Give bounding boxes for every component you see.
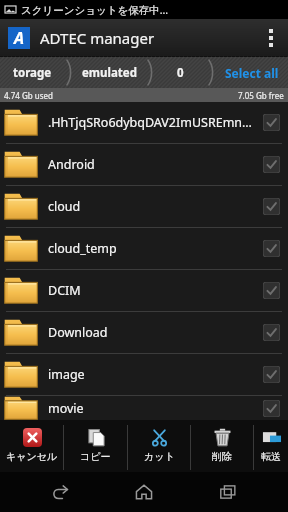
button[interactable]: Select item (263, 366, 280, 383)
button[interactable]: Home (121, 472, 167, 512)
button[interactable]: 0 (154, 57, 207, 88)
button[interactable]: movie (0, 396, 288, 420)
button[interactable]: 転送 (254, 423, 288, 472)
button[interactable]: .HhTjqSRo6dybqDAV2ImUSREmnZU= (0, 102, 288, 143)
button[interactable]: Select item (263, 240, 280, 257)
staticText: A (14, 27, 25, 49)
button[interactable]: コピー (64, 423, 127, 472)
button[interactable]: Select item (263, 156, 280, 173)
button[interactable]: Select all (215, 57, 288, 88)
button[interactable]: App logo (8, 27, 30, 49)
staticText: emulated (82, 65, 137, 81)
button[interactable]: cloud (0, 186, 288, 227)
staticText: image (48, 366, 257, 383)
staticText: スクリーンショットを保存中... (21, 3, 169, 17)
button[interactable]: カット (128, 423, 190, 472)
button[interactable]: Recent apps (205, 472, 251, 512)
button[interactable]: Select item (263, 114, 280, 131)
staticText: 4.74 Gb used (4, 90, 53, 101)
staticText: movie (48, 400, 257, 417)
staticText: ADTEC manager (40, 28, 155, 48)
button[interactable]: Back (38, 472, 84, 512)
button[interactable]: More options (254, 19, 288, 57)
button[interactable]: Select item (263, 282, 280, 299)
staticText: .HhTjqSRo6dybqDAV2ImUSREmnZU= (48, 114, 257, 131)
staticText: cloud (48, 198, 257, 215)
staticText: Android (48, 156, 257, 173)
staticText: キャンセル (6, 450, 58, 463)
button[interactable]: 削除 (191, 423, 253, 472)
staticText: 0 (177, 65, 184, 81)
button[interactable]: Android (0, 144, 288, 185)
staticText: DCIM (48, 282, 257, 299)
staticText: 転送 (261, 450, 281, 463)
staticText: 削除 (212, 450, 232, 463)
button[interactable]: Download (0, 312, 288, 353)
button[interactable]: Select item (263, 198, 280, 215)
button[interactable]: キャンセル (0, 423, 63, 472)
staticText: Select all (225, 65, 279, 81)
staticText: 7.05 Gb free (238, 90, 284, 101)
staticText: cloud_temp (48, 240, 257, 257)
button[interactable]: image (0, 354, 288, 395)
button[interactable]: Select item (263, 324, 280, 341)
button[interactable]: cloud_temp (0, 228, 288, 269)
button[interactable]: Select item (263, 400, 280, 417)
button[interactable]: emulated (73, 57, 146, 88)
button[interactable]: DCIM (0, 270, 288, 311)
staticText: Download (48, 324, 257, 341)
staticText: カット (144, 450, 175, 463)
button[interactable]: torage (0, 57, 65, 88)
staticText: コピー (80, 450, 111, 463)
staticText: torage (13, 65, 52, 81)
